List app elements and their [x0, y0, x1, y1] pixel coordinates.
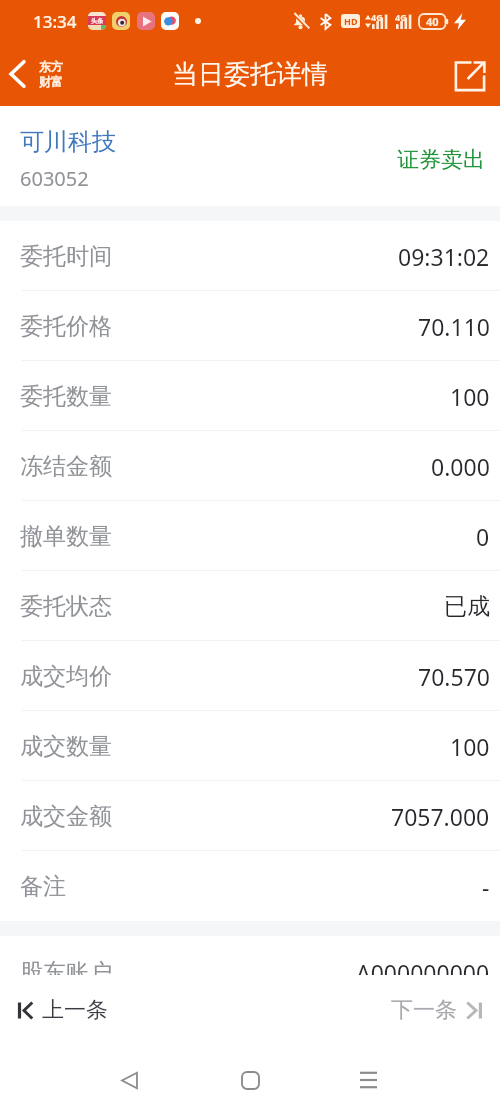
- staticText: 100: [450, 731, 490, 762]
- staticText: 0: [476, 521, 490, 552]
- staticText: -: [482, 871, 490, 902]
- button[interactable]: 委托状态: [0, 571, 500, 641]
- button[interactable]: Back: [102, 1053, 156, 1107]
- staticText: 4G: [371, 11, 383, 23]
- staticText: 财富: [39, 74, 63, 89]
- button[interactable]: 委托价格: [0, 291, 500, 361]
- button[interactable]: 下一条: [385, 988, 488, 1032]
- staticText: 70.110: [418, 311, 490, 342]
- button[interactable]: 委托时间: [0, 221, 500, 291]
- staticText: 可川科技: [20, 127, 116, 157]
- button[interactable]: 冻结金额: [0, 431, 500, 501]
- staticText: 下一条: [391, 996, 457, 1024]
- button[interactable]: Home: [223, 1053, 277, 1107]
- staticText: 成交均价: [20, 662, 112, 691]
- staticText: 委托状态: [20, 592, 112, 621]
- staticText: 70.570: [418, 661, 490, 692]
- button[interactable]: 委托数量: [0, 361, 500, 431]
- staticText: 40: [426, 14, 439, 29]
- staticText: 09:31:02: [398, 241, 490, 272]
- button[interactable]: 成交金额: [0, 781, 500, 851]
- button[interactable]: Share: [449, 55, 491, 97]
- staticText: 0.000: [431, 451, 490, 482]
- staticText: 成交数量: [20, 732, 112, 761]
- button[interactable]: 撤单数量: [0, 501, 500, 571]
- staticText: 委托时间: [20, 242, 112, 271]
- staticText: 上一条: [42, 996, 108, 1024]
- staticText: 证券卖出: [397, 146, 485, 174]
- button[interactable]: 成交数量: [0, 711, 500, 781]
- staticText: 备注: [20, 872, 66, 901]
- button[interactable]: 备注: [0, 851, 500, 921]
- button[interactable]: Back: [3, 51, 69, 97]
- staticText: 股东账户: [20, 958, 112, 975]
- button[interactable]: 上一条: [12, 988, 114, 1032]
- staticText: 委托价格: [20, 312, 112, 341]
- staticText: 603052: [20, 165, 89, 192]
- staticText: HD: [344, 15, 358, 27]
- staticText: 13:34: [33, 10, 77, 33]
- staticText: 7057.000: [391, 801, 490, 832]
- staticText: 当日委托详情: [172, 58, 328, 91]
- staticText: A000000000: [356, 957, 490, 975]
- button[interactable]: Recents: [341, 1053, 395, 1107]
- staticText: 4G: [395, 11, 407, 23]
- button[interactable]: 成交均价: [0, 641, 500, 711]
- staticText: 冻结金额: [20, 452, 112, 481]
- staticText: 委托数量: [20, 382, 112, 411]
- staticText: 已成: [444, 592, 490, 621]
- staticText: 撤单数量: [20, 522, 112, 551]
- staticText: 头条: [91, 17, 103, 25]
- staticText: 成交金额: [20, 802, 112, 831]
- button[interactable]: 股东账户: [20, 953, 490, 975]
- staticText: 100: [450, 381, 490, 412]
- staticText: 东方: [39, 59, 63, 74]
